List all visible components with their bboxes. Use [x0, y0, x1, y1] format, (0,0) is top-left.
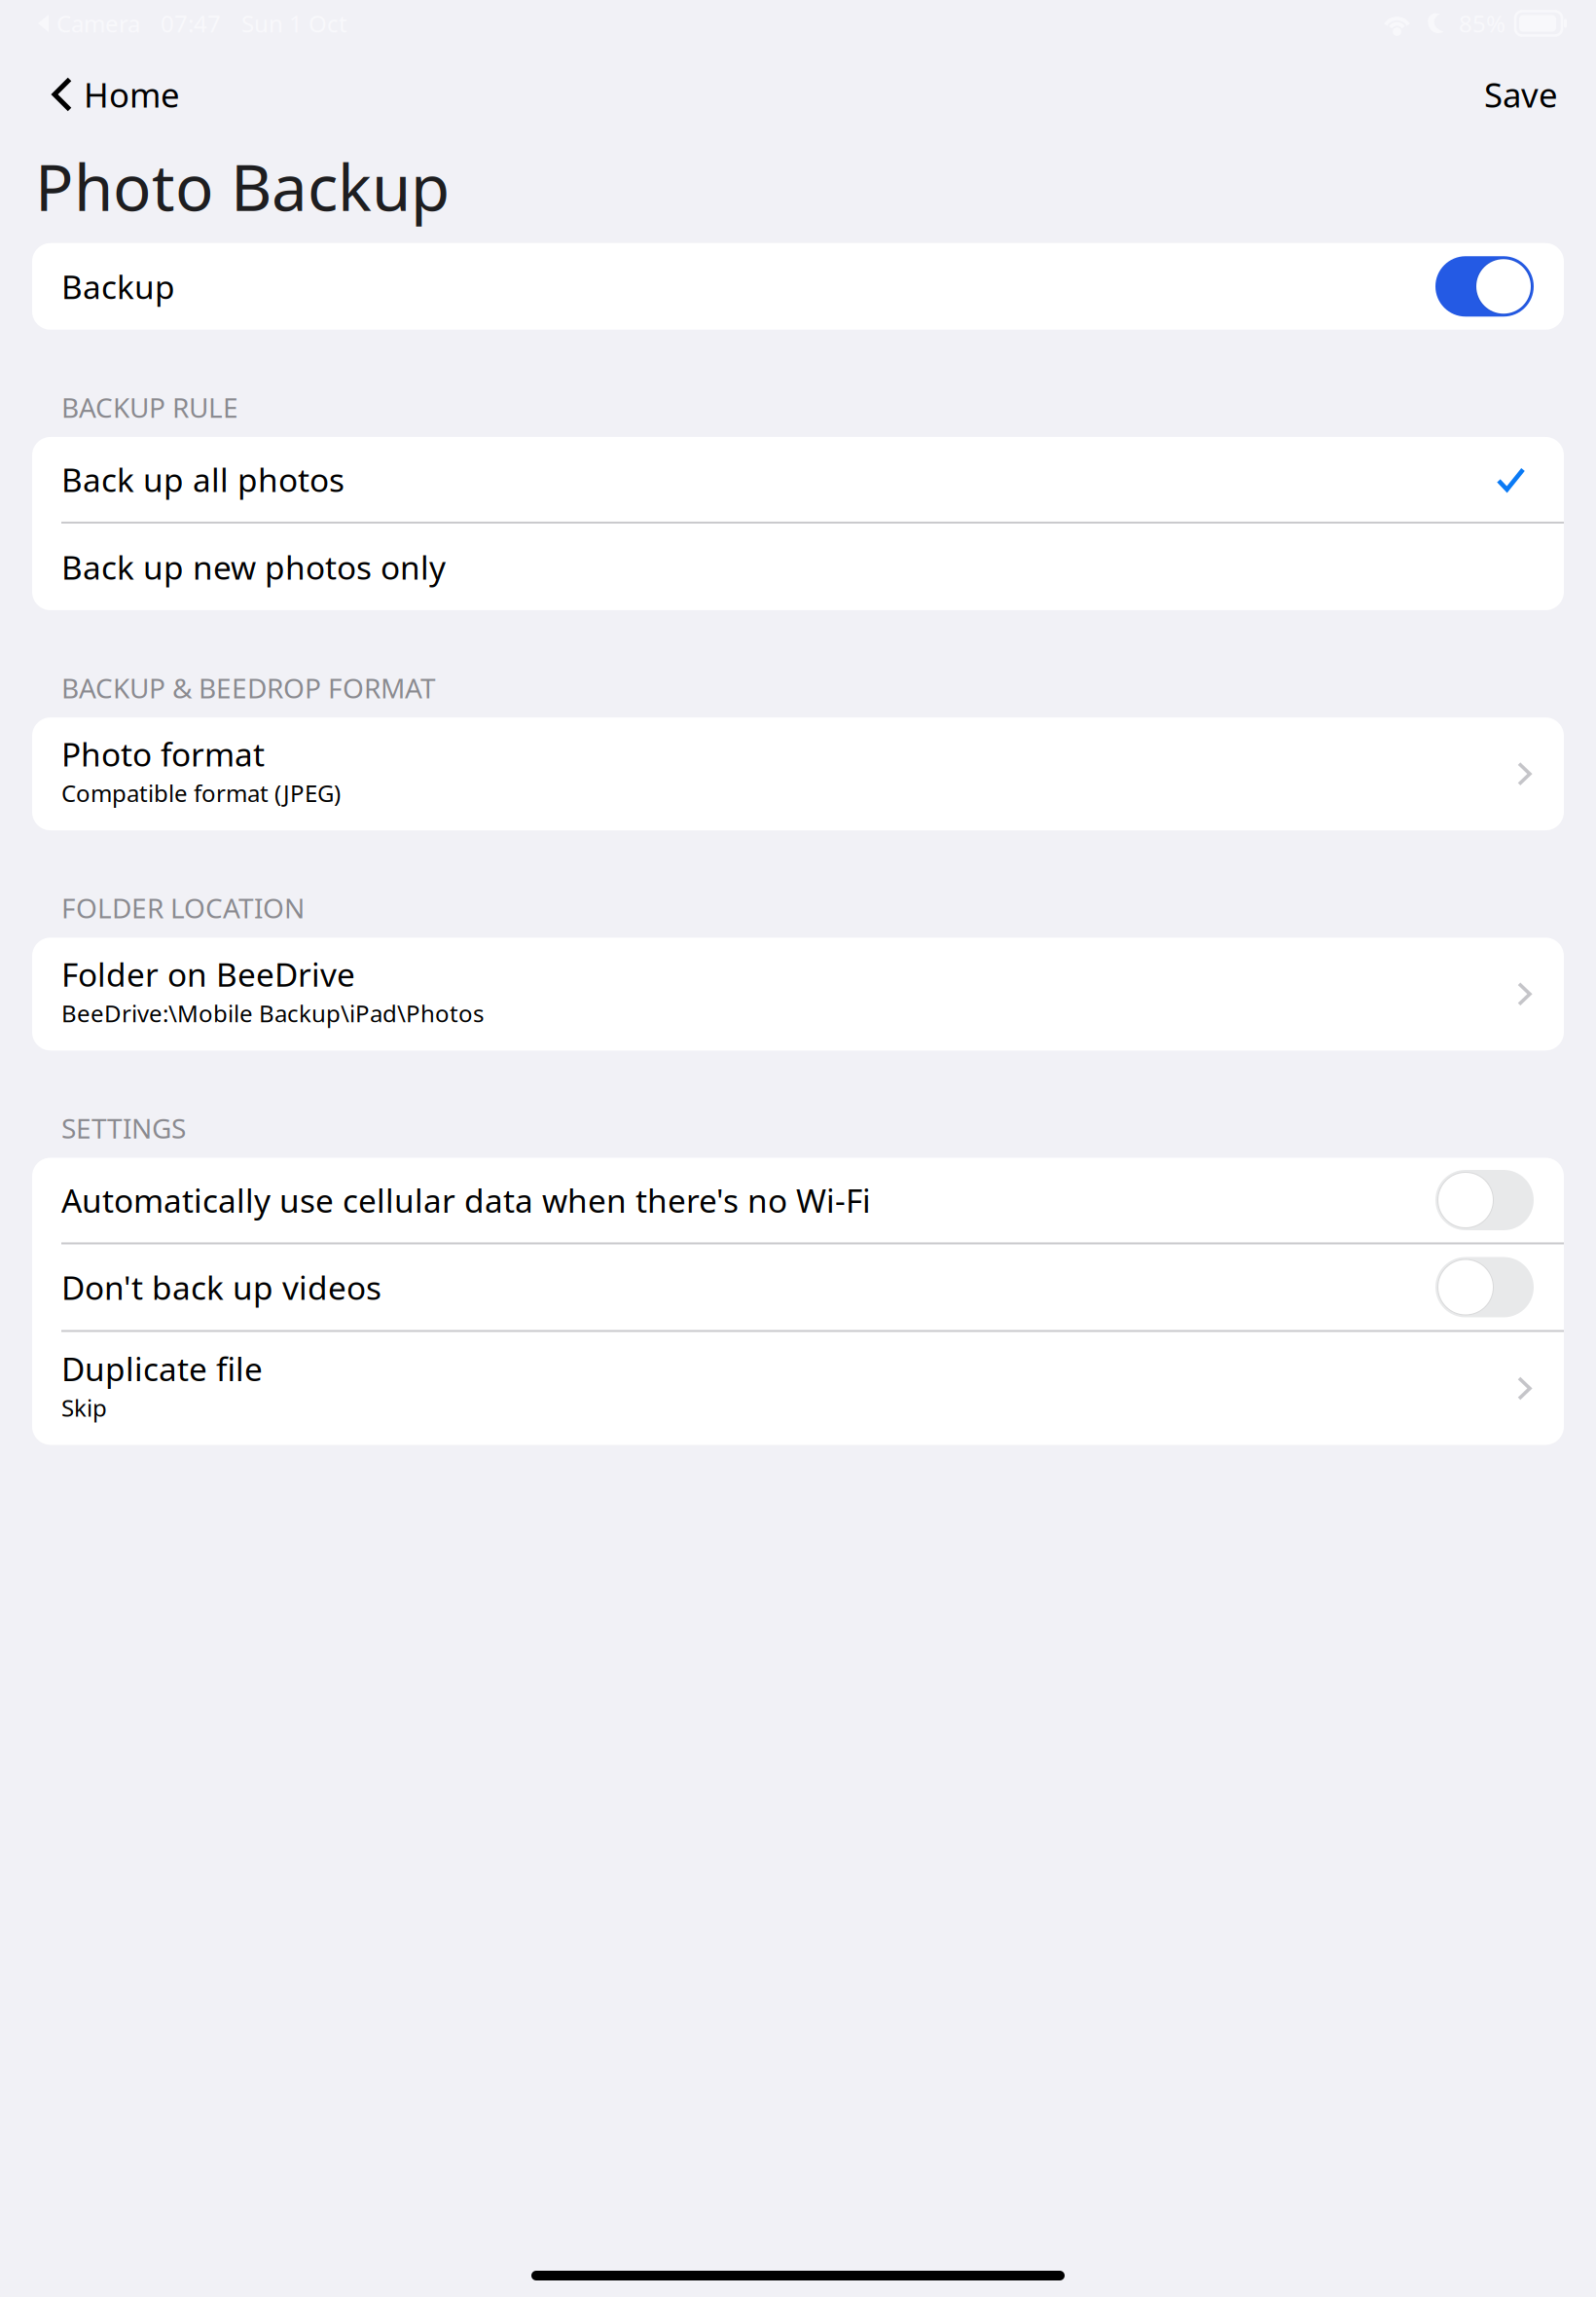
button[interactable]: Save	[1465, 58, 1596, 130]
staticText: Folder on BeeDrive	[61, 953, 355, 996]
staticText: Don't back up videos	[61, 1266, 381, 1309]
button[interactable]: Photo format	[32, 717, 1564, 830]
staticText: SETTINGS	[61, 1110, 186, 1146]
staticText: BACKUP RULE	[61, 389, 238, 425]
staticText: Duplicate file	[61, 1347, 263, 1390]
button[interactable]: Backup	[32, 243, 1564, 330]
button[interactable]: Don't back up videos	[32, 1244, 1564, 1330]
staticText: Back up all photos	[61, 458, 345, 501]
staticText: Back up new photos only	[61, 545, 446, 588]
button[interactable]: Back up all photos	[32, 437, 1564, 522]
staticText: BeeDrive:\Mobile Backup\iPad\Photos	[61, 998, 484, 1029]
staticText: BACKUP & BEEDROP FORMAT	[61, 670, 436, 706]
staticText: FOLDER LOCATION	[61, 890, 305, 926]
staticText: Compatible format (JPEG)	[61, 777, 341, 809]
staticText: Skip	[61, 1392, 107, 1423]
staticText: Photo format	[61, 733, 265, 776]
staticText: Automatically use cellular data when the…	[61, 1179, 871, 1222]
staticText: Home	[84, 72, 180, 117]
button[interactable]: Back up new photos only	[32, 524, 1564, 610]
button[interactable]: Duplicate file	[32, 1332, 1564, 1445]
staticText: Photo Backup	[35, 144, 450, 229]
staticText: Backup	[61, 265, 175, 308]
button[interactable]: Folder on BeeDrive	[32, 938, 1564, 1050]
staticText: Save	[1484, 72, 1558, 117]
button[interactable]: Automatically use cellular data when the…	[32, 1158, 1564, 1242]
button[interactable]: Home	[0, 58, 199, 130]
